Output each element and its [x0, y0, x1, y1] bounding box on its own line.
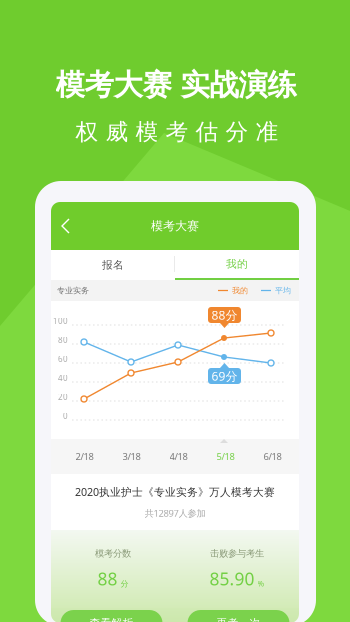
staticText: 平均 [275, 286, 291, 295]
staticText: 69分 [211, 368, 237, 384]
staticText: 击败参与考生 [210, 548, 264, 559]
staticText: 权 威 模 考 估 分 准 [75, 118, 278, 146]
staticText: 模考大赛 实战演练 [55, 67, 296, 103]
staticText: 共12897人参加 [144, 507, 205, 519]
staticText: 模考大赛 [151, 219, 199, 233]
button[interactable]: 我的 [175, 250, 299, 280]
staticText: 分 [120, 579, 128, 589]
staticText: 3/18 [122, 450, 140, 463]
staticText: % [257, 578, 264, 589]
staticText: 88 [97, 567, 117, 590]
staticText: 40 [58, 373, 68, 383]
staticText: 100 [53, 316, 68, 326]
staticText: 我的 [232, 286, 248, 295]
staticText: 查看解析 [89, 616, 133, 622]
staticText: 2020执业护士《专业实务》万人模考大赛 [75, 485, 275, 499]
staticText: 模考分数 [95, 548, 131, 559]
staticText: 6/18 [263, 450, 281, 463]
staticText: 5/18 [216, 450, 234, 463]
staticText: 85.90 [209, 567, 254, 590]
staticText: 我的 [226, 257, 248, 270]
staticText: 88分 [211, 307, 237, 323]
staticText: 0 [63, 411, 68, 421]
staticText: 80 [58, 335, 68, 345]
staticText: 60 [58, 354, 68, 364]
staticText: 20 [58, 392, 68, 402]
staticText: 报名 [102, 258, 124, 271]
staticText: 再考一次 [216, 616, 260, 622]
button[interactable]: 查看解析 [60, 610, 162, 622]
button[interactable]: Back [51, 212, 83, 240]
button[interactable]: 再考一次 [187, 610, 289, 622]
staticText: 4/18 [169, 450, 187, 463]
button[interactable]: 报名 [51, 250, 175, 280]
staticText: 专业实务 [57, 286, 89, 295]
staticText: 2/18 [75, 450, 93, 463]
